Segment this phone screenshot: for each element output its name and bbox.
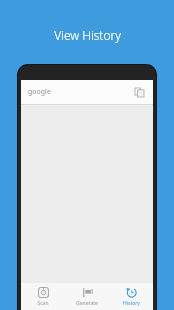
button[interactable]: google	[21, 80, 153, 104]
staticText: Generate	[76, 300, 98, 307]
staticText: History	[123, 300, 140, 307]
button[interactable]: Generate	[65, 283, 109, 310]
staticText: google	[28, 87, 51, 97]
button[interactable]: History	[109, 283, 153, 310]
staticText: View History	[54, 27, 121, 43]
button[interactable]: Copy	[132, 85, 146, 99]
button[interactable]: Scan	[21, 283, 65, 310]
staticText: Scan	[37, 300, 49, 307]
